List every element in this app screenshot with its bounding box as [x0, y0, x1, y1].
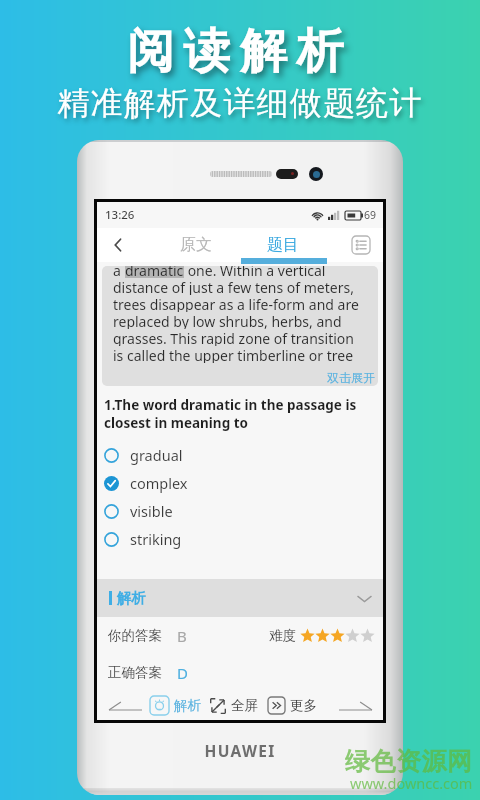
button[interactable]: visible	[104, 497, 383, 525]
button[interactable]: 更多	[268, 691, 317, 720]
staticText: a	[113, 266, 125, 278]
button[interactable]: Previous question	[104, 691, 146, 720]
staticText: one. Within a vertical	[184, 266, 326, 278]
button[interactable]: gradual	[104, 441, 383, 469]
button[interactable]: Back	[97, 228, 139, 262]
staticText: trees disappear as a life-form and are	[113, 295, 359, 312]
staticText: distance of just a few tens of meters,	[113, 278, 354, 295]
staticText: 绿色资源网	[345, 746, 473, 777]
staticText: 正确答案	[108, 664, 162, 681]
staticText: visible	[130, 501, 173, 521]
staticText: 69	[364, 208, 377, 222]
button[interactable]: 原文	[160, 228, 232, 262]
button[interactable]: 全屏	[210, 691, 258, 720]
staticText: striking	[130, 529, 182, 549]
staticText: complex	[130, 473, 188, 493]
button[interactable]: complex	[104, 469, 383, 497]
staticText: 解析	[117, 589, 146, 607]
staticText: B	[177, 626, 187, 646]
staticText: 13:26	[105, 207, 135, 223]
staticText: is called the upper timberline or tree	[113, 346, 354, 363]
staticText: www.downcc.com	[350, 773, 473, 793]
staticText: dramatic	[125, 266, 184, 278]
staticText: 更多	[290, 697, 317, 714]
staticText: 你的答案	[108, 627, 162, 644]
button[interactable]: 题目	[247, 228, 319, 262]
staticText: 精准解析及详细做题统计	[0, 83, 480, 123]
staticText: 全屏	[231, 697, 258, 714]
staticText: HUAWEI	[77, 740, 403, 761]
staticText: 难度	[269, 627, 296, 644]
staticText: 题目	[267, 235, 299, 255]
staticText: 解析	[174, 697, 201, 714]
staticText: D	[177, 663, 188, 683]
button[interactable]: striking	[104, 525, 383, 553]
staticText: 阅读解析	[0, 22, 480, 81]
staticText: grasses. This rapid zone of transition	[113, 329, 354, 346]
button[interactable]: 解析	[150, 691, 201, 720]
staticText: 1.The word dramatic in the passage is cl…	[104, 396, 357, 432]
staticText: gradual	[130, 445, 183, 465]
button[interactable]: 解析	[97, 579, 383, 617]
staticText: replaced by low shrubs, herbs, and	[113, 312, 342, 329]
button[interactable]: Question list	[339, 228, 383, 262]
button[interactable]: Next question	[331, 691, 379, 720]
staticText: 双击展开	[327, 370, 375, 385]
staticText: 原文	[180, 235, 212, 255]
